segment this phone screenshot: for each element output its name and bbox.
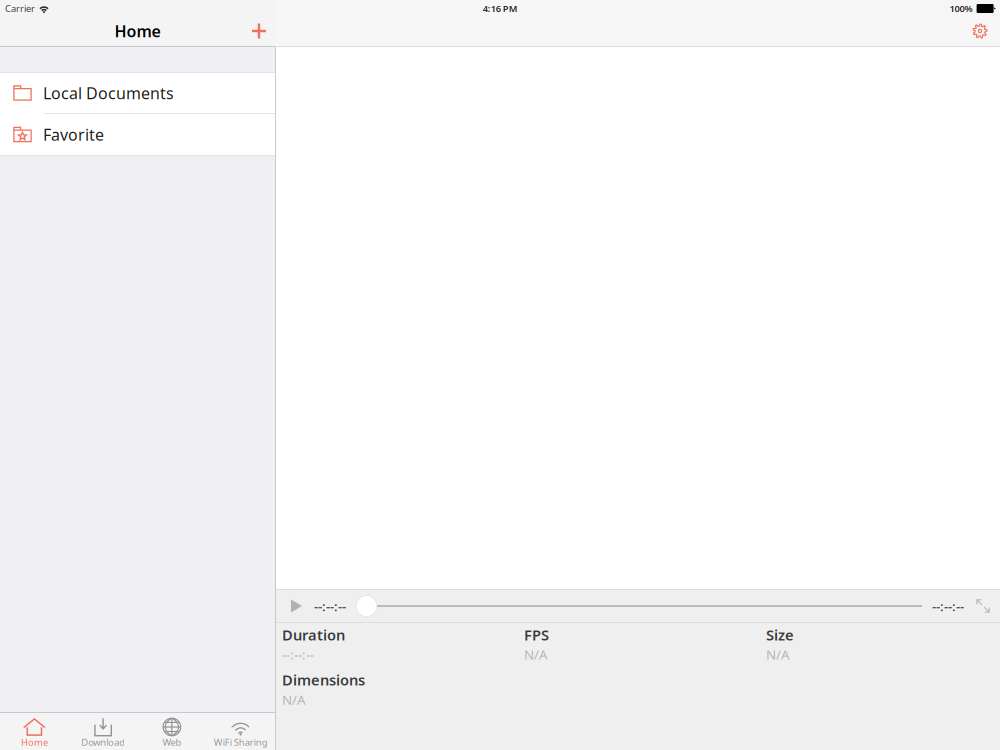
button[interactable]: Favorite xyxy=(0,114,275,155)
staticText: Dimensions xyxy=(282,670,365,690)
staticText: Home xyxy=(21,736,48,748)
staticText: 100% xyxy=(950,2,973,15)
button[interactable]: Download xyxy=(69,713,138,750)
staticText: --:--:-- xyxy=(282,645,314,663)
button[interactable]: Local Documents xyxy=(0,73,275,114)
button[interactable]: WiFi Sharing xyxy=(206,713,275,750)
staticText: Web xyxy=(162,736,181,748)
staticText: Download xyxy=(81,736,125,748)
staticText: WiFi Sharing xyxy=(214,736,268,748)
button[interactable]: Home xyxy=(0,713,69,750)
staticText: --:--:-- xyxy=(314,597,346,615)
staticText: Home xyxy=(114,20,160,42)
staticText: N/A xyxy=(524,645,548,663)
staticText: Local Documents xyxy=(43,82,174,104)
button[interactable]: Full screen xyxy=(964,599,990,613)
button[interactable]: Add xyxy=(251,23,275,39)
staticText: Favorite xyxy=(43,124,104,145)
button[interactable]: Play xyxy=(282,598,310,613)
staticText: --:--:-- xyxy=(932,597,964,615)
button[interactable]: Settings xyxy=(972,23,1000,39)
button[interactable]: Web xyxy=(137,713,206,750)
staticText: N/A xyxy=(766,645,790,663)
staticText: N/A xyxy=(282,691,306,708)
staticText: Carrier xyxy=(5,2,35,15)
staticText: 4:16 PM xyxy=(483,2,518,15)
staticText: Duration xyxy=(282,625,345,644)
staticText: Size xyxy=(766,625,794,644)
staticText: FPS xyxy=(524,625,549,644)
